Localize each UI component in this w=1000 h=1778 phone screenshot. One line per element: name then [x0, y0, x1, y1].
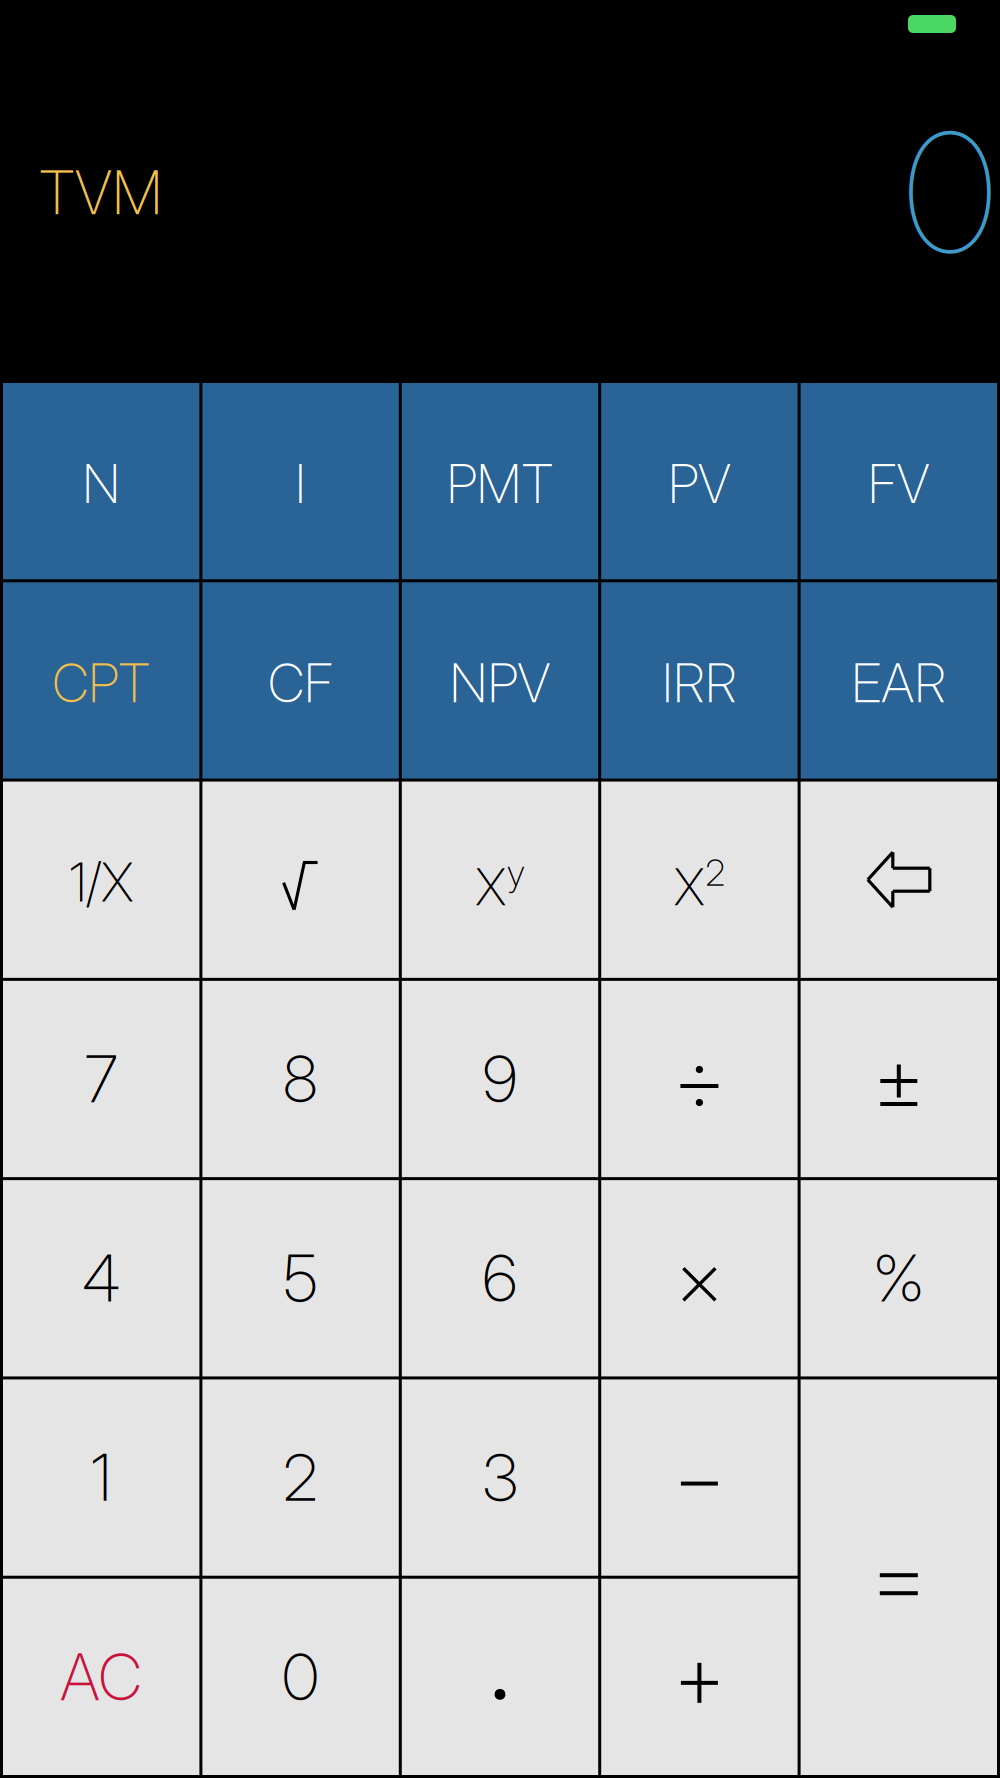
button[interactable]: 1 — [3, 1379, 199, 1576]
staticText: 3 — [482, 1439, 517, 1516]
staticText: X — [674, 856, 705, 917]
button[interactable]: Equals — [801, 1379, 997, 1775]
button[interactable]: 7 — [3, 981, 199, 1177]
staticText: 5 — [284, 1240, 318, 1317]
button[interactable]: 8 — [202, 981, 399, 1177]
button[interactable]: IRR — [601, 582, 798, 779]
button[interactable]: AC — [3, 1579, 199, 1775]
staticText: PMT — [446, 451, 553, 516]
button[interactable]: NPV — [402, 582, 598, 779]
button[interactable]: PV — [601, 383, 798, 579]
button[interactable]: 0 — [202, 1579, 399, 1775]
button[interactable]: 2 — [202, 1379, 399, 1576]
staticText: TVM — [39, 156, 162, 229]
staticText: I — [295, 451, 306, 516]
staticText: 0 — [282, 1638, 319, 1715]
button[interactable]: 6 — [402, 1180, 598, 1376]
staticText: 1 — [91, 1439, 112, 1516]
staticText: y — [507, 851, 525, 894]
button[interactable]: Plus minus — [801, 981, 997, 1177]
staticText: 6 — [482, 1240, 517, 1317]
button[interactable]: X to the power of y — [402, 782, 598, 978]
button[interactable]: CF — [202, 582, 399, 779]
staticText: IRR — [662, 651, 737, 715]
staticText: % — [873, 1240, 925, 1317]
button[interactable]: X squared — [601, 782, 798, 978]
button[interactable]: EAR — [801, 582, 997, 779]
staticText: PV — [668, 451, 731, 516]
button[interactable]: N — [3, 383, 199, 579]
staticText: AC — [60, 1638, 142, 1715]
button[interactable]: Decimal point — [402, 1579, 598, 1775]
staticText: 0 — [904, 92, 996, 292]
button[interactable]: Plus — [601, 1579, 798, 1775]
button[interactable]: Divide — [601, 981, 798, 1177]
staticText: 1/X — [69, 850, 133, 914]
button[interactable]: Multiply — [601, 1180, 798, 1376]
button[interactable]: FV — [801, 383, 997, 579]
staticText: 7 — [85, 1040, 118, 1118]
staticText: X — [475, 856, 506, 917]
button[interactable]: PMT — [402, 383, 598, 579]
button[interactable]: Minus — [601, 1379, 798, 1576]
staticText: CPT — [52, 651, 150, 715]
button[interactable]: 4 — [3, 1180, 199, 1376]
button[interactable]: % — [801, 1180, 997, 1376]
staticText: 2 — [283, 1439, 318, 1516]
staticText: FV — [868, 451, 930, 516]
button[interactable]: 1/X — [3, 782, 199, 978]
button[interactable]: Delete — [801, 782, 997, 978]
staticText: NPV — [449, 651, 550, 715]
button[interactable]: CPT — [3, 582, 199, 779]
button[interactable]: Square root — [202, 782, 399, 978]
staticText: CF — [268, 651, 333, 715]
staticText: 2 — [705, 851, 725, 894]
staticText: EAR — [851, 651, 946, 715]
button[interactable]: 3 — [402, 1379, 598, 1576]
button[interactable]: 9 — [402, 981, 598, 1177]
staticText: 9 — [482, 1040, 517, 1118]
staticText: N — [82, 451, 120, 516]
staticText: 4 — [82, 1240, 120, 1317]
staticText: 8 — [283, 1040, 318, 1118]
button[interactable]: 5 — [202, 1180, 399, 1376]
button[interactable]: I — [202, 383, 399, 579]
